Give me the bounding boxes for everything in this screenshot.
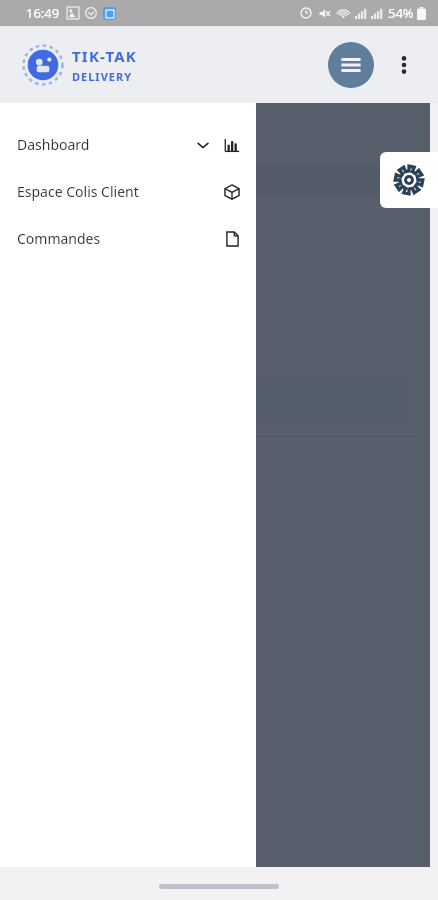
staticText: Espace Colis Client [17,182,139,201]
button[interactable]: More options [384,45,424,85]
staticText: TIK-TAK [72,46,137,66]
button[interactable]: Menu [328,42,374,88]
button[interactable]: Settings [380,152,438,208]
staticText: 54% [388,4,414,22]
button[interactable]: Espace Colis Client [0,168,256,215]
staticText: DELIVERY [72,69,133,84]
button[interactable]: Commandes [0,215,256,262]
staticText: 16:49 [26,4,60,22]
button[interactable]: Dashboard [0,121,256,168]
staticText: Commandes [17,229,101,248]
staticText: Dashboard [17,135,90,154]
button[interactable]: TIK-TAK [22,44,137,86]
